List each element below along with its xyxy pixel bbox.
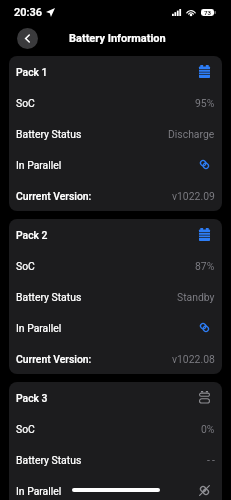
staticText: 0% bbox=[201, 423, 215, 435]
staticText: Discharge bbox=[168, 128, 215, 140]
staticText: - - bbox=[207, 454, 215, 466]
staticText: SoC bbox=[16, 97, 35, 109]
button[interactable]: Pack 2 bbox=[9, 219, 222, 250]
staticText: SoC bbox=[16, 423, 35, 435]
staticText: In Parallel bbox=[16, 322, 62, 334]
staticText: SoC bbox=[16, 260, 35, 272]
staticText: Standby bbox=[177, 291, 215, 303]
staticText: Current Version: bbox=[16, 190, 92, 202]
staticText: Current Version: bbox=[16, 353, 92, 365]
button[interactable]: Pack 1 bbox=[9, 56, 222, 87]
staticText: 20:36 bbox=[14, 6, 43, 19]
staticText: Battery Status bbox=[16, 128, 82, 140]
button[interactable]: In Parallel bbox=[9, 149, 222, 180]
button[interactable]: Current Version: bbox=[9, 343, 222, 374]
staticText: Pack 1 bbox=[16, 66, 48, 78]
staticText: v1022.09 bbox=[172, 190, 215, 202]
staticText: 87% bbox=[195, 260, 215, 272]
staticText: 95% bbox=[195, 97, 215, 109]
staticText: Pack 2 bbox=[16, 229, 48, 241]
button[interactable]: SoC bbox=[9, 250, 222, 281]
staticText: Pack 3 bbox=[16, 392, 48, 404]
staticText: Battery Information bbox=[69, 32, 166, 45]
staticText: v1022.08 bbox=[172, 353, 215, 365]
button[interactable]: Pack 3 bbox=[9, 382, 222, 413]
staticText: 73 bbox=[204, 9, 212, 16]
button[interactable]: In Parallel bbox=[9, 312, 222, 343]
staticText: In Parallel bbox=[16, 159, 62, 171]
staticText: In Parallel bbox=[16, 485, 62, 497]
button[interactable]: Battery Status bbox=[9, 118, 222, 149]
button[interactable]: SoC bbox=[9, 413, 222, 444]
button[interactable]: SoC bbox=[9, 87, 222, 118]
staticText: Battery Status bbox=[16, 454, 82, 466]
button[interactable]: Current Version: bbox=[9, 180, 222, 211]
button[interactable]: Battery Status bbox=[9, 281, 222, 312]
staticText: Battery Status bbox=[16, 291, 82, 303]
button[interactable]: Back bbox=[17, 28, 38, 49]
button[interactable]: In Parallel bbox=[9, 475, 222, 500]
button[interactable]: Battery Status bbox=[9, 444, 222, 475]
